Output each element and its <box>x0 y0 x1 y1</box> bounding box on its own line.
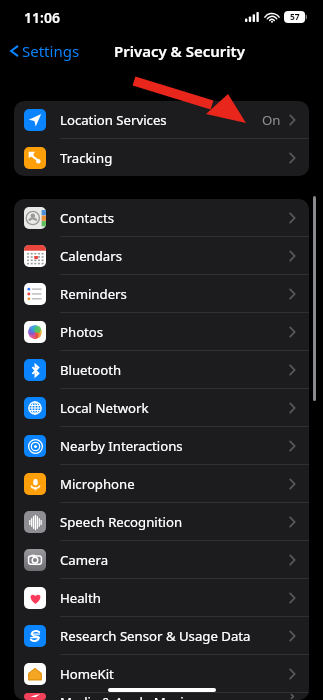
button[interactable]: Settings <box>8 41 80 61</box>
button[interactable]: Calendars <box>14 237 309 275</box>
staticText: Nearby Interactions <box>60 437 183 455</box>
staticText: Calendars <box>60 247 122 265</box>
staticText: Research Sensor & Usage Data <box>60 627 251 645</box>
button[interactable]: Nearby Interactions <box>14 427 309 465</box>
staticText: Privacy & Security <box>114 41 245 61</box>
staticText: Health <box>60 589 101 607</box>
staticText: Microphone <box>60 475 135 493</box>
staticText: Local Network <box>60 399 149 417</box>
button[interactable]: Tracking <box>14 139 309 176</box>
staticText: On <box>262 111 281 129</box>
button[interactable]: HomeKit <box>14 655 309 693</box>
staticText: Speech Recognition <box>60 513 183 531</box>
button[interactable]: Reminders <box>14 275 309 313</box>
button[interactable]: Contacts <box>14 199 309 237</box>
button[interactable]: Media & Apple Music <box>14 693 309 700</box>
button[interactable]: Speech Recognition <box>14 503 309 541</box>
staticText: 57 <box>290 11 300 23</box>
staticText: 11:06 <box>24 8 60 27</box>
staticText: Settings <box>22 41 80 61</box>
staticText: Location Services <box>60 111 167 129</box>
staticText: Photos <box>60 323 104 341</box>
staticText: HomeKit <box>60 665 114 683</box>
button[interactable]: Location Services <box>14 101 309 139</box>
staticText: Tracking <box>60 149 113 167</box>
button[interactable]: Photos <box>14 313 309 351</box>
button[interactable]: Camera <box>14 541 309 579</box>
button[interactable]: Local Network <box>14 389 309 427</box>
button[interactable]: Bluetooth <box>14 351 309 389</box>
staticText: Media & Apple Music <box>60 693 190 700</box>
staticText: Bluetooth <box>60 361 122 379</box>
staticText: Camera <box>60 551 109 569</box>
button[interactable]: Research Sensor & Usage Data <box>14 617 309 655</box>
staticText: Reminders <box>60 285 127 303</box>
staticText: Contacts <box>60 209 115 227</box>
button[interactable]: Microphone <box>14 465 309 503</box>
button[interactable]: Health <box>14 579 309 617</box>
